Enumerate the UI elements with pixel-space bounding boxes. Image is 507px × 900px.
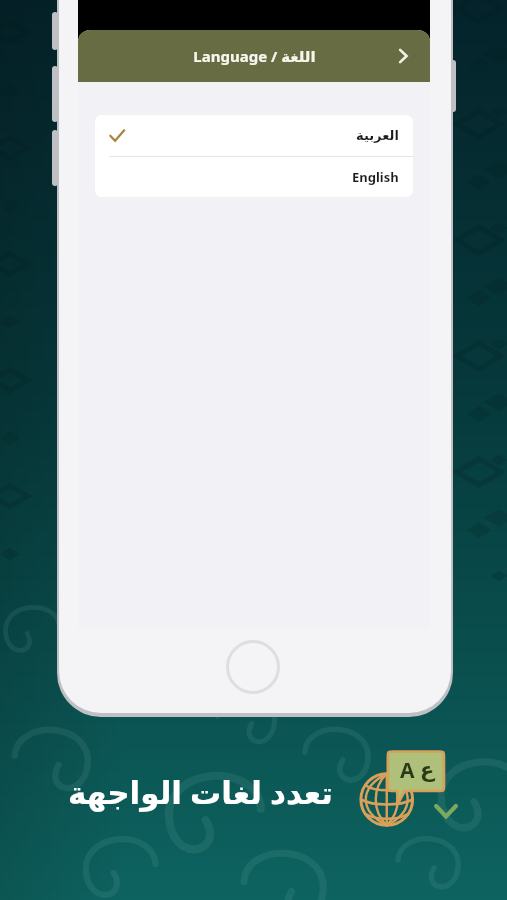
button[interactable]: English (95, 157, 413, 197)
staticText: العربية (356, 128, 399, 143)
button[interactable]: Multilingual interface (351, 742, 461, 842)
button[interactable]: Language / اللغة (78, 30, 430, 82)
staticText: Language / اللغة (193, 46, 316, 66)
staticText: تعدد لغات الواجهة (68, 771, 333, 813)
staticText: ع (420, 758, 435, 782)
staticText: English (352, 168, 399, 186)
button[interactable]: العربية (95, 115, 413, 156)
button[interactable]: Next (388, 41, 418, 71)
staticText: A (400, 756, 415, 785)
